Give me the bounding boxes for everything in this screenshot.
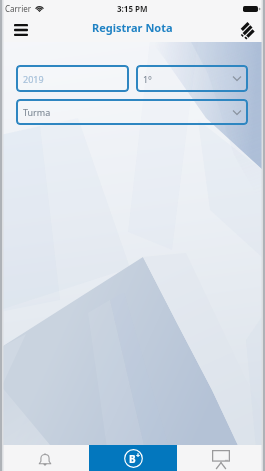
staticText: Carrier bbox=[5, 3, 32, 14]
button[interactable]: Menu bbox=[9, 18, 33, 42]
staticText: + bbox=[136, 451, 141, 461]
staticText: Turma bbox=[23, 106, 51, 118]
button[interactable]: Turma bbox=[16, 99, 248, 125]
staticText: B bbox=[129, 452, 136, 466]
button[interactable]: 2019 bbox=[16, 65, 129, 92]
button[interactable]: Assinar bbox=[235, 19, 257, 41]
button[interactable]: Notificacoes bbox=[0, 445, 89, 471]
staticText: 3:15 PM bbox=[117, 3, 148, 14]
staticText: 1º bbox=[143, 73, 152, 85]
staticText: Registrar Nota bbox=[92, 20, 173, 35]
button[interactable]: Aulas bbox=[177, 445, 265, 471]
button[interactable]: 1º bbox=[136, 65, 248, 92]
button[interactable]: Notas bbox=[89, 445, 177, 471]
staticText: 2019 bbox=[23, 73, 44, 85]
